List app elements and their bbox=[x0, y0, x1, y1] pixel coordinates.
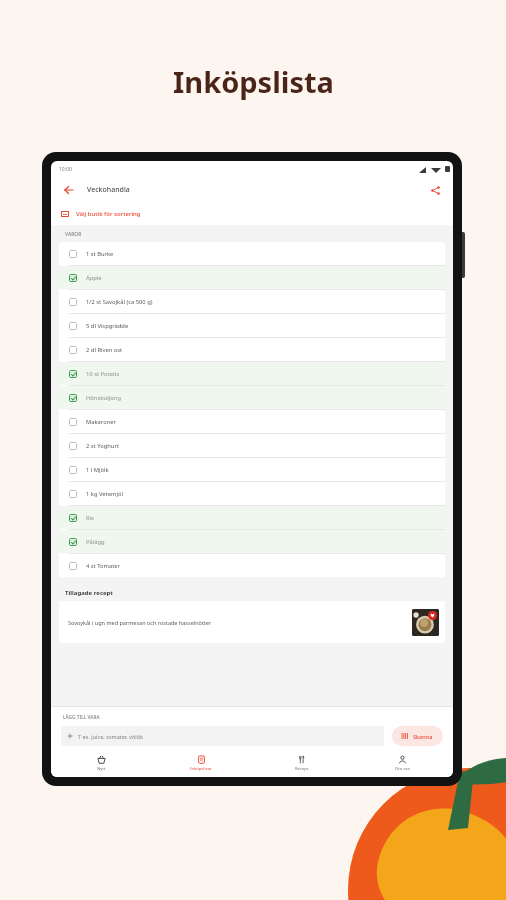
button[interactable]: Ris bbox=[59, 506, 445, 529]
button[interactable]: Share bbox=[427, 182, 443, 198]
staticText: T ex. juice, tomater, vitlök bbox=[78, 733, 143, 740]
staticText: Makaroner bbox=[86, 418, 116, 426]
staticText: 1 kg Vetemjöl bbox=[86, 490, 123, 498]
button[interactable]: Makaroner bbox=[59, 410, 445, 433]
staticText: 10 st Potatis bbox=[86, 370, 120, 378]
staticText: 4 st Tomater bbox=[86, 562, 120, 570]
button[interactable]: 1 kg Vetemjöl bbox=[59, 482, 445, 505]
staticText: Om oss bbox=[395, 766, 410, 772]
button[interactable]: Välj butik för sortering bbox=[51, 203, 453, 225]
button[interactable]: T ex. juice, tomater, vitlök bbox=[61, 726, 384, 746]
button[interactable]: Recept bbox=[251, 752, 352, 774]
staticText: Veckohandla bbox=[87, 185, 130, 195]
button[interactable]: Om oss bbox=[352, 752, 453, 774]
button[interactable]: Nytt bbox=[51, 752, 151, 774]
staticText: Recept bbox=[295, 766, 309, 772]
button[interactable]: 10 st Potatis bbox=[59, 362, 445, 385]
staticText: Inköpslista bbox=[173, 62, 334, 101]
button[interactable]: Äpple bbox=[59, 266, 445, 289]
staticText: 5 dl Vispgrädde bbox=[86, 322, 129, 330]
button[interactable]: 1 l Mjölk bbox=[59, 458, 445, 481]
staticText: Pålägg bbox=[86, 538, 105, 546]
button[interactable]: 4 st Tomater bbox=[59, 554, 445, 577]
staticText: Hönsbuljong bbox=[86, 394, 121, 402]
staticText: Ris bbox=[86, 514, 94, 522]
staticText: 1/2 st Savojkål (ca 500 g) bbox=[86, 298, 153, 306]
staticText: LÄGG TILL VARA bbox=[63, 714, 100, 721]
staticText: Äpple bbox=[86, 274, 102, 282]
button[interactable]: 1/2 st Savojkål (ca 500 g) bbox=[59, 290, 445, 313]
staticText: VAROR bbox=[65, 231, 82, 238]
staticText: Tillagade recept bbox=[65, 589, 113, 597]
button[interactable]: Inköpslista bbox=[151, 752, 251, 774]
button[interactable]: 2 dl Riven ost bbox=[59, 338, 445, 361]
button[interactable]: Pålägg bbox=[59, 530, 445, 553]
staticText: 2 st Yoghurt bbox=[86, 442, 119, 450]
staticText: Skanna bbox=[413, 733, 433, 740]
button[interactable]: Sovoykål i ugn med parmesan och rostade … bbox=[59, 601, 445, 643]
staticText: Nytt bbox=[97, 766, 106, 772]
button[interactable]: Skanna bbox=[392, 726, 443, 746]
button[interactable]: 2 st Yoghurt bbox=[59, 434, 445, 457]
staticText: 2 dl Riven ost bbox=[86, 346, 123, 354]
staticText: 10:00 bbox=[59, 166, 72, 173]
staticText: Inköpslista bbox=[190, 766, 212, 772]
staticText: 1 l Mjölk bbox=[86, 466, 109, 474]
button[interactable]: 5 dl Vispgrädde bbox=[59, 314, 445, 337]
staticText: Välj butik för sortering bbox=[76, 210, 141, 218]
staticText: 1 st Burke bbox=[86, 250, 114, 258]
button[interactable]: Hönsbuljong bbox=[59, 386, 445, 409]
staticText: Sovoykål i ugn med parmesan och rostade … bbox=[68, 619, 408, 626]
button[interactable]: Back bbox=[61, 182, 77, 198]
button[interactable]: 1 st Burke bbox=[59, 242, 445, 265]
